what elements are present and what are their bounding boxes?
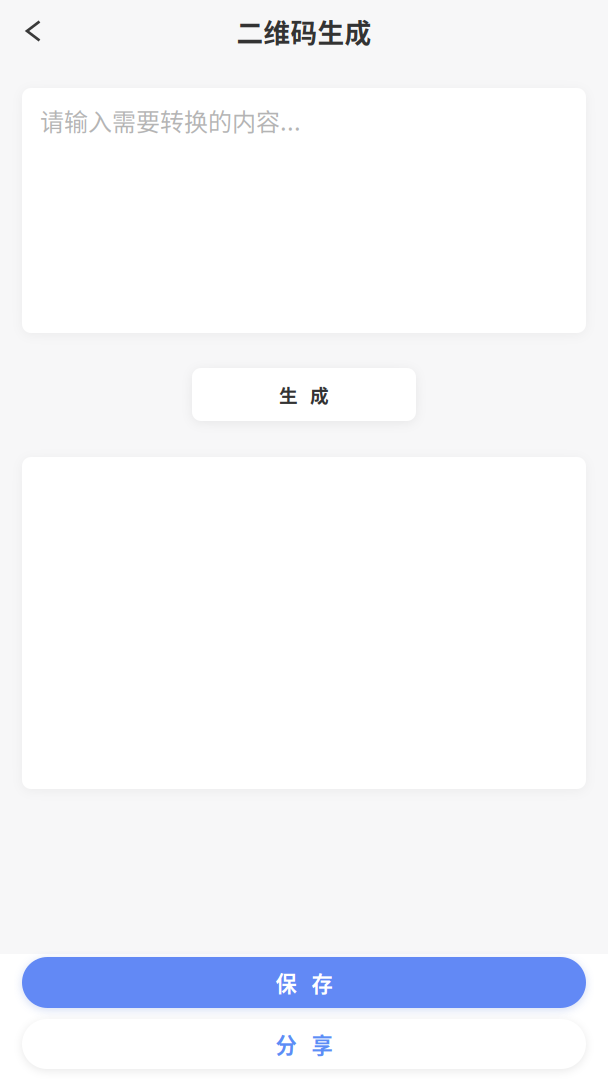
button[interactable]: 分 享 <box>22 1019 586 1069</box>
staticText: 保 存 <box>275 967 332 998</box>
staticText: 生 成 <box>279 381 329 408</box>
staticText: 二维码生成 <box>236 12 371 50</box>
button[interactable]: 保 存 <box>22 957 586 1008</box>
staticText: 请输入需要转换的内容... <box>40 103 301 138</box>
staticText: 分 享 <box>275 1029 332 1059</box>
button[interactable]: Back <box>0 0 67 63</box>
button[interactable]: 请输入需要转换的内容... <box>22 88 586 333</box>
button[interactable]: 生 成 <box>192 368 416 421</box>
